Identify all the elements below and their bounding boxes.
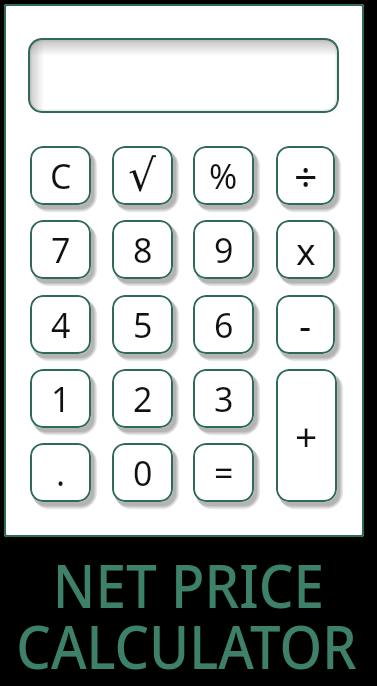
button[interactable]: . — [30, 443, 91, 502]
staticText: NET PRICE — [16, 544, 361, 616]
staticText: 1 — [51, 376, 71, 422]
button[interactable]: 8 — [112, 220, 173, 279]
staticText: √ — [128, 150, 157, 201]
staticText: . — [56, 450, 66, 496]
staticText: 5 — [133, 302, 153, 348]
button[interactable]: % — [193, 146, 254, 205]
staticText: + — [295, 409, 318, 462]
button[interactable]: √ — [112, 146, 173, 205]
staticText: CALCULATOR — [15, 605, 357, 677]
button[interactable]: ÷ — [276, 146, 335, 205]
staticText: 4 — [51, 302, 71, 348]
staticText: 2 — [133, 376, 153, 422]
button[interactable]: = — [193, 443, 254, 502]
staticText: 6 — [214, 302, 234, 348]
staticText: ÷ — [294, 148, 318, 204]
staticText: - — [299, 299, 312, 351]
button[interactable]: 9 — [193, 220, 254, 279]
staticText: 0 — [133, 450, 153, 496]
button[interactable]: 4 — [30, 295, 91, 354]
staticText: 8 — [133, 227, 153, 273]
staticText: 3 — [214, 376, 234, 422]
button[interactable]: + — [276, 369, 337, 502]
button[interactable]: C — [30, 146, 91, 205]
staticText: 7 — [51, 227, 71, 273]
staticText: x — [296, 225, 316, 275]
button[interactable]: 2 — [112, 369, 173, 428]
staticText: = — [214, 450, 234, 496]
staticText: % — [209, 153, 238, 199]
button[interactable]: 0 — [112, 443, 173, 502]
button[interactable]: x — [276, 220, 335, 279]
button[interactable]: 6 — [193, 295, 254, 354]
button[interactable]: 3 — [193, 369, 254, 428]
staticText: 9 — [214, 227, 234, 273]
button[interactable]: - — [276, 295, 335, 354]
button[interactable]: 1 — [30, 369, 91, 428]
staticText: C — [50, 153, 72, 199]
button[interactable]: 7 — [30, 220, 91, 279]
button[interactable]: 5 — [112, 295, 173, 354]
